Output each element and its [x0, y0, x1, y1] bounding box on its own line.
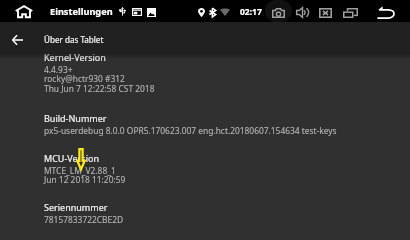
- staticText: Kernel-Version: [44, 51, 106, 63]
- button[interactable]: Seriennummer: [0, 201, 410, 230]
- staticText: Einstellungen: [50, 5, 113, 18]
- staticText: Build-Nummer: [44, 112, 107, 124]
- button[interactable]: Screenshot: [265, 0, 292, 22]
- staticText: 4.4.93+: [44, 64, 73, 75]
- button[interactable]: Recents: [338, 0, 360, 22]
- staticText: 78157833722CBE2D: [44, 214, 124, 225]
- button[interactable]: Back: [374, 0, 398, 22]
- button[interactable]: Home: [13, 2, 35, 20]
- staticText: 02:17: [240, 6, 262, 18]
- staticText: Seriennummer: [44, 201, 108, 213]
- staticText: px5-userdebug 8.0.0 OPR5.170623.007 eng.…: [44, 125, 337, 136]
- button[interactable]: MCU-Version: [0, 152, 410, 189]
- staticText: Jun 12 2018 11:20:59: [44, 174, 126, 185]
- staticText: MCU-Version: [44, 152, 99, 164]
- button[interactable]: Kernel-Version: [0, 51, 410, 97]
- button[interactable]: Build-Nummer: [0, 112, 410, 140]
- staticText: Thu Jun 7 12:22:58 CST 2018: [44, 83, 155, 94]
- button[interactable]: Volume: [292, 0, 313, 22]
- button[interactable]: Close: [315, 0, 336, 22]
- staticText: Über das Tablet: [44, 34, 104, 45]
- staticText: rocky@hctr930 #312: [44, 73, 125, 84]
- button[interactable]: Navigate up: [2, 26, 32, 54]
- staticText: MTCE_LM_V2.88_1: [44, 165, 116, 176]
